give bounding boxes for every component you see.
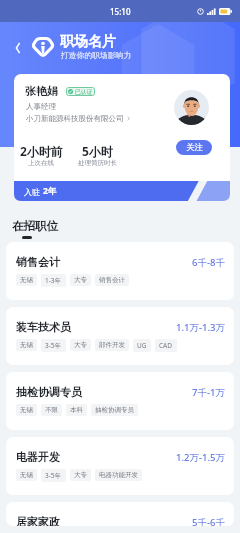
staticText: 在招职位	[12, 219, 58, 233]
staticText: 已认证	[75, 88, 93, 95]
staticText: 大专	[74, 471, 87, 479]
staticText: 1-3年	[45, 276, 62, 285]
staticText: 本科	[70, 406, 83, 414]
staticText: 张艳娟	[25, 84, 58, 98]
staticText: 居家家政	[16, 515, 60, 526]
staticText: 1.2万-1.5万	[176, 451, 225, 464]
staticText: 关注	[186, 142, 203, 153]
staticText: 抽检协调专员	[95, 406, 134, 414]
staticText: 部件开发	[99, 341, 125, 349]
staticText: 1.1万-1.3万	[176, 321, 225, 334]
staticText: 打造你的职场影响力	[61, 50, 132, 60]
staticText: 6千-8千	[192, 256, 225, 269]
staticText: 装车技术员	[16, 320, 71, 334]
staticText: 抽检协调专员	[16, 385, 82, 399]
staticText: 5千-6千	[192, 516, 225, 526]
button[interactable]: Back	[7, 38, 27, 58]
staticText: 无锡	[20, 276, 33, 284]
staticText: 2年	[43, 185, 57, 197]
staticText: 销售会计	[99, 276, 125, 284]
staticText: 职场名片	[60, 33, 116, 51]
staticText: 不限	[45, 406, 58, 414]
button[interactable]: 销售会计	[6, 242, 234, 300]
staticText: 处理简历时长	[78, 159, 117, 167]
staticText: 电器开发	[16, 450, 60, 464]
button[interactable]: 居家家政	[6, 502, 234, 526]
staticText: 15:10	[110, 6, 131, 17]
staticText: 3-5年	[45, 341, 62, 350]
staticText: UG	[137, 341, 147, 350]
staticText: 无锡	[20, 471, 33, 479]
staticText: 7千-1万	[192, 386, 225, 399]
staticText: 2小时前	[20, 143, 63, 159]
staticText: 无锡	[20, 341, 33, 349]
button[interactable]: 电器开发	[6, 437, 234, 495]
staticText: 入驻	[24, 186, 43, 197]
staticText: 3-5年	[45, 471, 62, 480]
staticText: 小刀新能源科技股份有限公司	[26, 114, 124, 123]
button[interactable]: 装车技术员	[6, 307, 234, 365]
staticText: 销售会计	[16, 255, 60, 269]
staticText: 电器功能开发	[99, 471, 138, 479]
staticText: 无锡	[20, 406, 33, 414]
staticText: 上次在线	[28, 159, 54, 167]
staticText: 大专	[74, 341, 87, 349]
staticText: 5小时	[82, 143, 113, 159]
button[interactable]: 关注	[176, 140, 212, 155]
staticText: 大专	[74, 276, 87, 284]
staticText: CAD	[159, 341, 173, 350]
button[interactable]: 抽检协调专员	[6, 372, 234, 430]
staticText: 人事经理	[26, 102, 56, 111]
